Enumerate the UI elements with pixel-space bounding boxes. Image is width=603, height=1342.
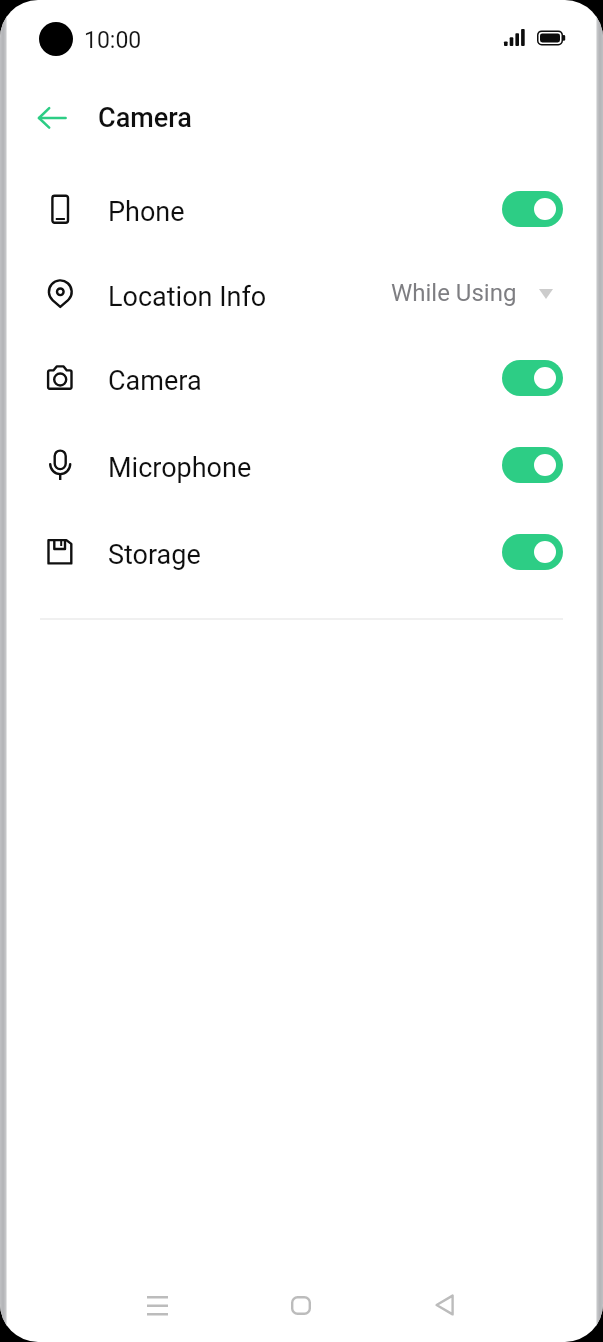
button[interactable]: Toggle permission <box>502 191 563 227</box>
staticText: Location Info <box>108 281 267 313</box>
button[interactable]: Toggle permission <box>502 360 563 396</box>
button[interactable]: Microphone <box>7 422 596 508</box>
button[interactable]: Storage <box>7 509 596 595</box>
staticText: Phone <box>108 196 185 228</box>
staticText: 10:00 <box>84 27 142 54</box>
staticText: Microphone <box>108 452 252 484</box>
button[interactable]: Location Info <box>7 251 596 337</box>
button[interactable]: Back <box>420 1281 468 1329</box>
staticText: Storage <box>108 539 201 571</box>
button[interactable]: Phone <box>7 166 596 252</box>
button[interactable]: While Using <box>357 251 563 337</box>
button[interactable]: Camera <box>7 335 596 421</box>
staticText: While Using <box>391 279 517 307</box>
staticText: Camera <box>108 365 202 397</box>
button[interactable]: Toggle permission <box>502 447 563 483</box>
button[interactable]: Toggle permission <box>502 534 563 570</box>
button[interactable]: Back <box>20 96 74 140</box>
button[interactable]: Home <box>277 1281 325 1329</box>
button[interactable]: Recent apps <box>133 1281 181 1329</box>
staticText: Camera <box>98 102 192 134</box>
